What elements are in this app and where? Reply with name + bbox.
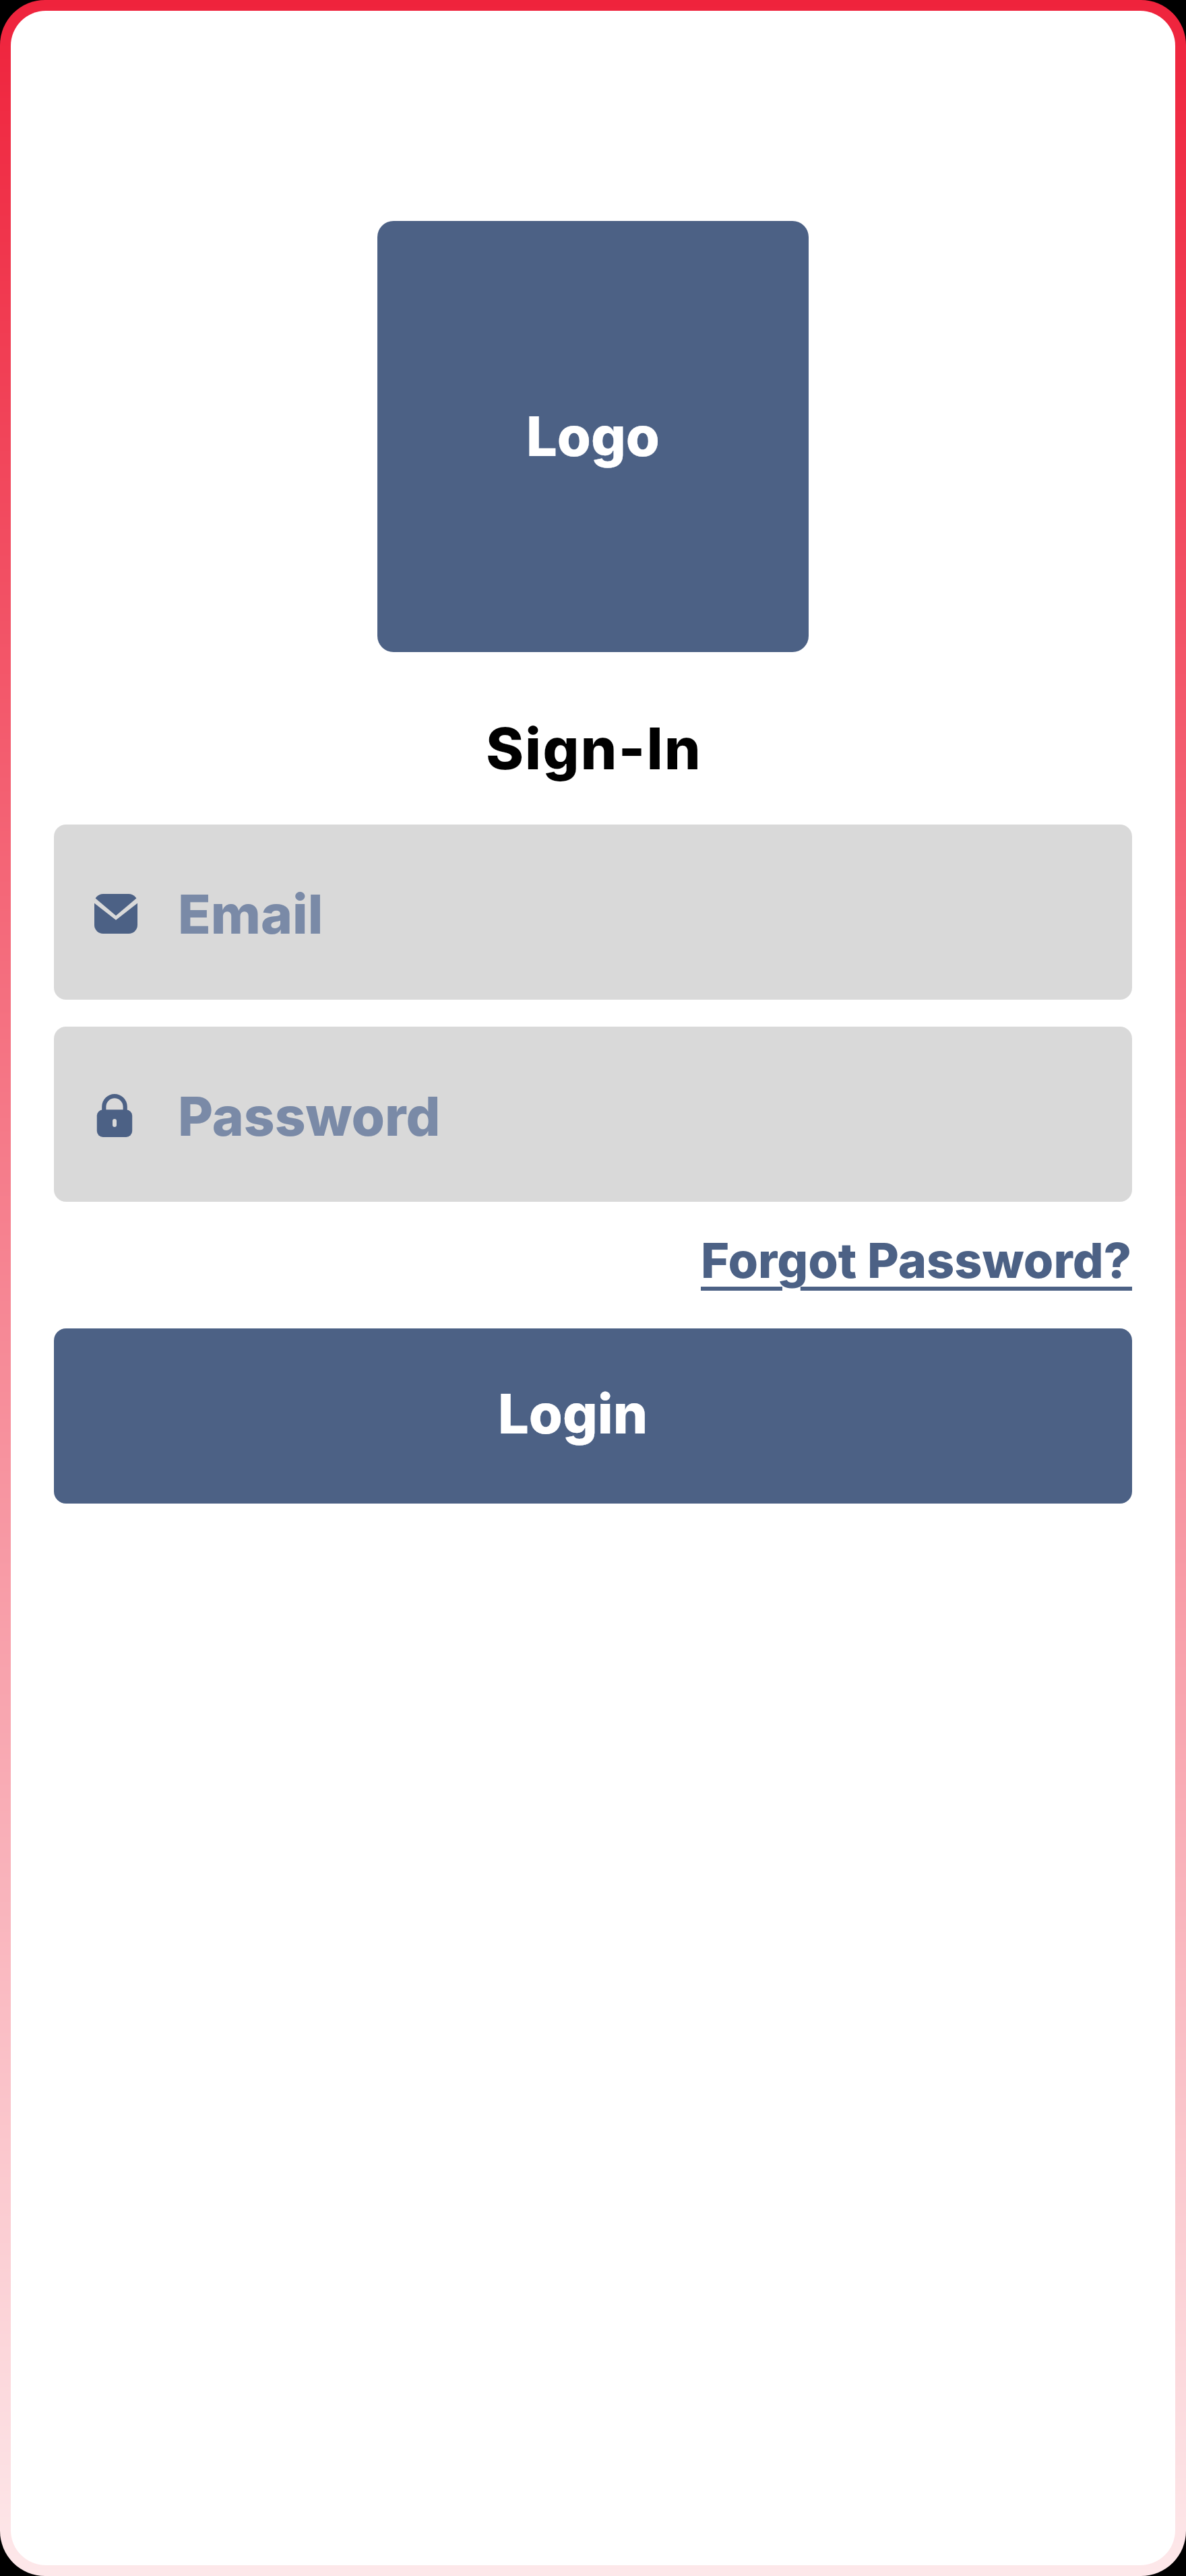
staticText: Sign-In xyxy=(486,714,702,783)
button[interactable]: Forgot Password? xyxy=(701,1231,1132,1289)
button[interactable]: Login xyxy=(54,1328,1132,1504)
staticText: Password xyxy=(178,1083,441,1149)
staticText: Email xyxy=(178,881,323,946)
button[interactable]: Email xyxy=(54,825,1132,1000)
other: Password xyxy=(94,1094,137,1137)
other: Email xyxy=(94,894,137,934)
staticText: Forgot Password? xyxy=(701,1231,1132,1289)
button[interactable]: Password xyxy=(54,1027,1132,1202)
staticText: Login xyxy=(498,1381,648,1447)
staticText: Logo xyxy=(526,404,660,470)
